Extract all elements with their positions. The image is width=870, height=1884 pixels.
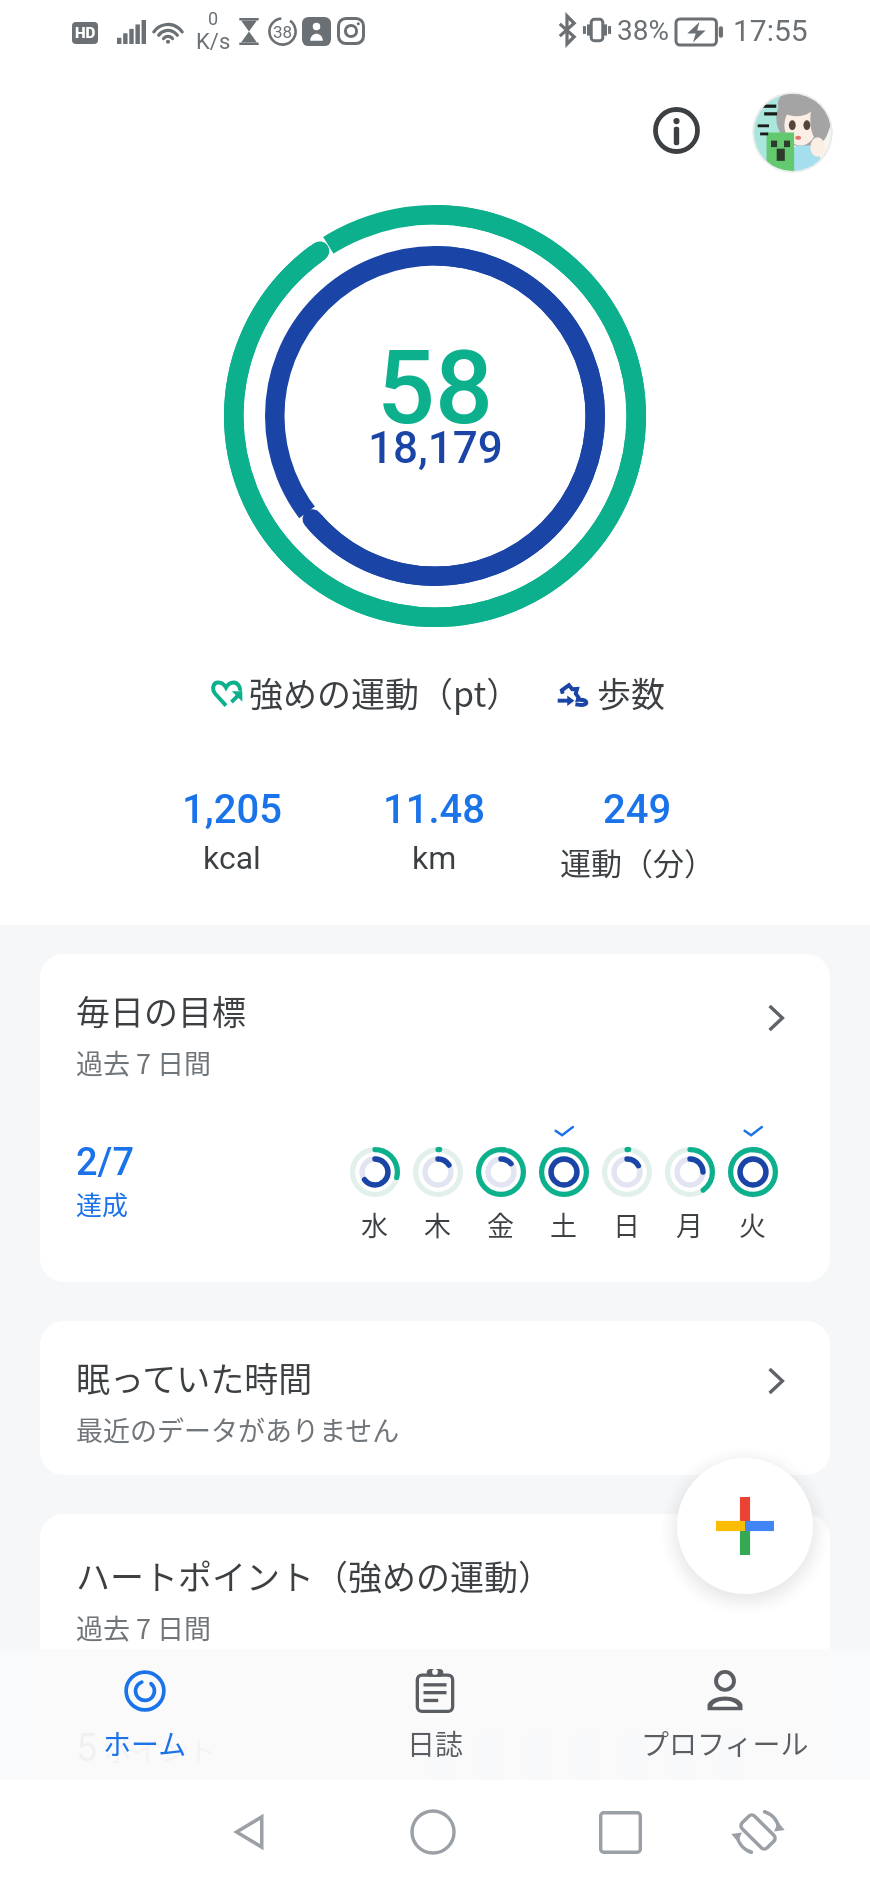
button[interactable]: 日 (595, 1117, 658, 1244)
staticText: 1,205 (182, 786, 282, 833)
staticText: 火 (739, 1205, 766, 1244)
button[interactable]: 水 (343, 1117, 406, 1244)
button[interactable]: 火 (721, 1117, 784, 1244)
staticText: 強めの運動（pt） (249, 668, 521, 717)
button[interactable]: 249 (536, 786, 739, 884)
staticText: km (412, 839, 457, 877)
button[interactable]: Rotate (724, 1780, 792, 1884)
staticText: 運動（分） (560, 839, 715, 884)
staticText: 58 (377, 328, 493, 448)
staticText: 毎日の目標 (76, 986, 246, 1035)
staticText: 0 (208, 8, 219, 29)
staticText: 249 (603, 786, 672, 833)
staticText: 11.48 (383, 786, 486, 833)
staticText: 日誌 (407, 1723, 464, 1764)
staticText: 18,179 (368, 422, 503, 474)
staticText: 38 (273, 22, 293, 42)
button[interactable]: Add (677, 1458, 813, 1594)
staticText: 月 (676, 1205, 703, 1244)
staticText: K/s (196, 29, 231, 55)
button[interactable]: 11.48 (333, 786, 536, 877)
staticText: 過去 7 日間 (76, 1608, 212, 1647)
staticText: 5 (76, 1726, 98, 1771)
button[interactable]: Info (641, 95, 711, 165)
staticText: 歩数 (597, 668, 665, 717)
button[interactable]: ホーム (0, 1649, 290, 1780)
button[interactable]: 金 (469, 1117, 532, 1244)
staticText: 眠っていた時間 (76, 1353, 313, 1402)
staticText: 38% (617, 14, 669, 47)
button[interactable]: Recents (586, 1780, 654, 1884)
staticText: kcal (203, 839, 261, 877)
staticText: 日 (613, 1205, 640, 1244)
staticText: ホーム (103, 1723, 187, 1764)
button[interactable]: 月 (658, 1117, 721, 1244)
staticText: 金 (487, 1205, 514, 1244)
button[interactable]: プロフィール (580, 1649, 870, 1780)
staticText: 水 (361, 1205, 388, 1244)
button[interactable]: ハートポイント（強めの運動） (40, 1514, 830, 1844)
staticText: 17:55 (733, 13, 808, 48)
button[interactable]: 毎日の目標 (40, 954, 830, 1282)
button[interactable]: 1,205 (131, 786, 333, 877)
button[interactable]: 歩数 (556, 664, 665, 720)
button[interactable]: Back (216, 1780, 284, 1884)
button[interactable]: 日誌 (290, 1649, 580, 1780)
staticText: プロフィール (641, 1723, 809, 1764)
button[interactable]: 土 (532, 1117, 595, 1244)
staticText: 土 (550, 1205, 577, 1244)
staticText: 2/7 (76, 1140, 135, 1185)
button[interactable]: 木 (406, 1117, 469, 1244)
button[interactable]: Profile (752, 92, 833, 173)
staticText: 最近のデータがありません (76, 1410, 400, 1449)
staticText: 木 (424, 1205, 451, 1244)
staticText: 達成 (76, 1185, 129, 1223)
staticText: ハートポイント（強めの運動） (76, 1551, 552, 1600)
button[interactable]: Home (399, 1780, 467, 1884)
button[interactable]: 強めの運動（pt） (209, 664, 521, 720)
staticText: ポイント (104, 1730, 217, 1771)
staticText: HD (75, 24, 96, 42)
staticText: 過去 7 日間 (76, 1043, 212, 1082)
button[interactable]: 眠っていた時間 (40, 1321, 830, 1475)
